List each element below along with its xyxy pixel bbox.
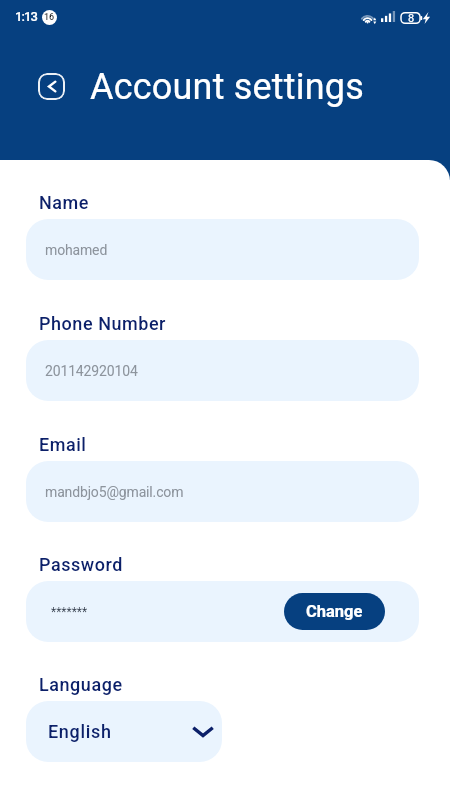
other: Expand language list [193, 722, 213, 742]
button[interactable]: mandbjo5@gmail.com [26, 461, 419, 522]
staticText: Name [39, 192, 89, 213]
staticText: Language [39, 674, 123, 695]
staticText: 1:13 [15, 9, 37, 24]
button[interactable]: 201142920104 [26, 340, 419, 401]
button[interactable]: English [26, 701, 222, 762]
button[interactable]: mohamed [26, 219, 419, 280]
staticText: 8 [408, 12, 415, 25]
staticText: mandbjo5@gmail.com [45, 484, 184, 500]
staticText: Password [39, 554, 123, 575]
button[interactable]: Back [38, 73, 65, 100]
staticText: Account settings [90, 66, 364, 108]
staticText: 16 [44, 12, 55, 23]
staticText: Change [306, 602, 363, 621]
staticText: 201142920104 [45, 363, 138, 379]
staticText: Email [39, 434, 87, 455]
staticText: Phone Number [39, 313, 167, 334]
staticText: mohamed [45, 242, 108, 258]
button[interactable]: Change [284, 593, 385, 630]
staticText: English [48, 721, 112, 742]
staticText: ******* [51, 605, 88, 619]
